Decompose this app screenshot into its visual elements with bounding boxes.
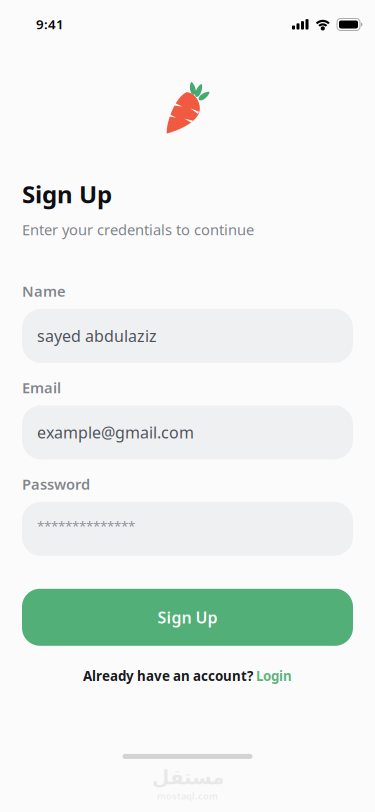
staticText: Login: [256, 667, 292, 685]
button[interactable]: Already have an account?: [22, 666, 353, 686]
staticText: mostaql.com: [157, 790, 218, 802]
staticText: Enter your credentials to continue: [22, 220, 254, 239]
staticText: Password: [22, 474, 90, 494]
staticText: Sign Up: [157, 607, 217, 628]
staticText: Email: [22, 378, 61, 397]
staticText: Name: [22, 281, 66, 301]
staticText: Already have an account?: [83, 667, 253, 685]
button[interactable]: Sign Up: [22, 589, 353, 646]
staticText: 9:41: [36, 15, 64, 33]
staticText: **************: [37, 517, 135, 535]
staticText: مستقل: [151, 766, 223, 789]
staticText: example@gmail.com: [37, 422, 194, 443]
staticText: sayed abdulaziz: [37, 325, 157, 346]
staticText: Sign Up: [22, 178, 112, 210]
